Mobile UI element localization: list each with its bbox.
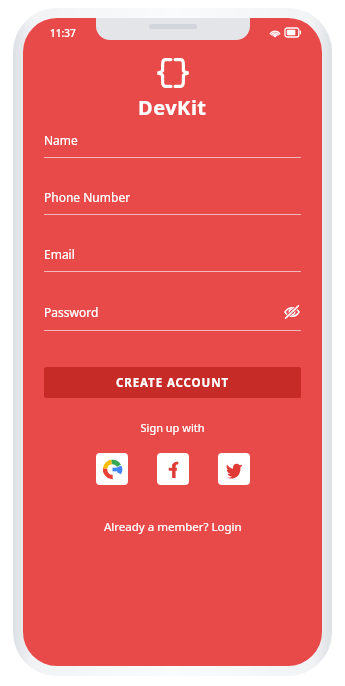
button[interactable]: Phone Number xyxy=(44,189,301,215)
staticText: 11:37 xyxy=(50,26,76,40)
button[interactable]: Already a member? Login xyxy=(44,519,301,535)
staticText: Phone Number xyxy=(44,189,301,205)
staticText: Email xyxy=(44,246,301,262)
staticText: Already a member? Login xyxy=(104,519,242,535)
button[interactable]: Sign up with Google xyxy=(96,453,128,485)
button[interactable]: Password xyxy=(44,303,301,331)
staticText: DevKit xyxy=(138,94,207,121)
button[interactable]: CREATE ACCOUNT xyxy=(44,367,301,398)
staticText: Name xyxy=(44,132,301,148)
staticText: Password xyxy=(44,304,283,320)
staticText: Sign up with xyxy=(44,420,301,435)
button[interactable]: Name xyxy=(44,132,301,158)
button[interactable]: Show password xyxy=(283,303,301,321)
staticText: CREATE ACCOUNT xyxy=(116,375,229,391)
button[interactable]: Email xyxy=(44,246,301,272)
button[interactable]: Sign up with Twitter xyxy=(218,453,250,485)
button[interactable]: Sign up with Facebook xyxy=(157,453,189,485)
